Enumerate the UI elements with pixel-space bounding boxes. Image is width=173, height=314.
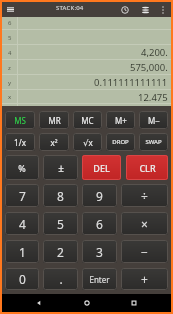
staticText: x² (50, 137, 58, 148)
staticText: MR (48, 115, 61, 126)
staticText: . (59, 271, 63, 287)
staticText: 0.111111111111 (94, 76, 168, 89)
button[interactable]: 9 (82, 184, 117, 207)
staticText: √x (83, 137, 93, 148)
staticText: 6 (96, 216, 103, 232)
staticText: 8 (57, 188, 64, 204)
button[interactable]: MS (5, 111, 35, 129)
staticText: 1/x (14, 137, 26, 148)
button[interactable]: CLR (126, 155, 168, 180)
staticText: 7 (19, 188, 26, 204)
button[interactable]: − (121, 240, 168, 263)
staticText: − (141, 244, 148, 260)
staticText: DROP (112, 138, 129, 146)
staticText: 4,200. (141, 46, 168, 59)
button[interactable]: Enter (82, 268, 117, 290)
button[interactable]: DROP (106, 133, 135, 151)
button[interactable]: M+ (106, 111, 135, 129)
button[interactable]: More options (155, 2, 171, 17)
button[interactable]: MR (39, 111, 69, 129)
staticText: 1 (19, 244, 26, 260)
button[interactable]: 3 (82, 240, 117, 263)
button[interactable]: ÷ (121, 184, 168, 207)
button[interactable]: Navigation menu (2, 2, 19, 17)
staticText: MC (81, 115, 94, 126)
button[interactable]: x² (39, 133, 69, 151)
button[interactable]: 6 (82, 212, 117, 235)
button[interactable]: Recent apps (124, 294, 144, 312)
staticText: Enter (89, 274, 110, 285)
staticText: + (141, 271, 148, 287)
staticText: STACK:04 (56, 4, 84, 12)
button[interactable]: Stack (135, 2, 155, 17)
staticText: 575,000. (130, 61, 168, 74)
button[interactable]: √x (73, 133, 102, 151)
button[interactable]: SWAP (139, 133, 168, 151)
staticText: z (8, 64, 11, 72)
button[interactable]: . (43, 268, 78, 290)
staticText: ÷ (141, 188, 148, 204)
staticText: 9 (96, 188, 103, 204)
button[interactable]: Back (29, 294, 49, 312)
button[interactable]: M− (139, 111, 168, 129)
staticText: 6 (8, 19, 12, 27)
staticText: DEL (93, 162, 110, 174)
button[interactable]: + (121, 268, 168, 290)
button[interactable]: 4 (5, 212, 39, 235)
button[interactable]: 8 (43, 184, 78, 207)
button[interactable]: % (5, 155, 39, 180)
staticText: × (141, 216, 148, 232)
button[interactable]: 1/x (5, 133, 35, 151)
staticText: 2 (57, 244, 64, 260)
button[interactable]: ± (43, 155, 78, 180)
button[interactable]: History (115, 2, 135, 17)
staticText: CLR (139, 162, 156, 174)
staticText: M− (148, 115, 160, 126)
staticText: 4 (8, 49, 12, 57)
staticText: x (8, 93, 12, 101)
button[interactable]: DEL (82, 155, 121, 180)
button[interactable]: 2 (43, 240, 78, 263)
staticText: 5 (57, 216, 64, 232)
staticText: y (8, 79, 12, 87)
staticText: M+ (115, 115, 127, 126)
staticText: 3 (96, 244, 103, 260)
button[interactable]: 0 (5, 268, 39, 290)
button[interactable]: 5 (43, 212, 78, 235)
staticText: 4 (19, 216, 26, 232)
button[interactable]: Home (77, 294, 97, 312)
staticText: MS (14, 115, 26, 126)
staticText: 0 (19, 271, 26, 287)
staticText: 5 (8, 34, 12, 42)
button[interactable]: MC (73, 111, 102, 129)
button[interactable]: 1 (5, 240, 39, 263)
button[interactable]: 7 (5, 184, 39, 207)
button[interactable]: × (121, 212, 168, 235)
staticText: % (18, 162, 26, 174)
staticText: SWAP (145, 138, 162, 146)
staticText: ± (58, 161, 64, 175)
staticText: 12.475 (138, 91, 168, 104)
